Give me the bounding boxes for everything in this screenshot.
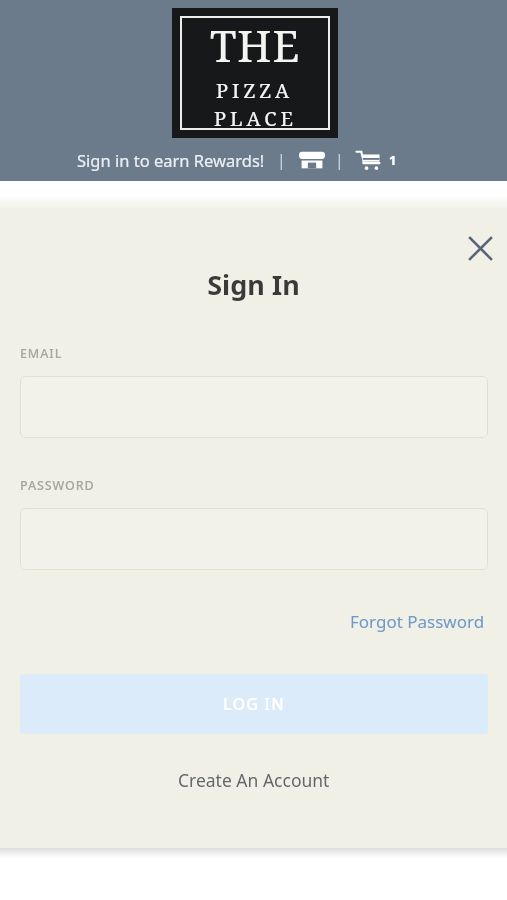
button[interactable]: Close (458, 226, 502, 270)
staticText: 1 (389, 151, 397, 169)
staticText: Create An Account (178, 768, 330, 792)
staticText: THE (210, 16, 301, 75)
staticText: PLACE (214, 105, 297, 130)
staticText: Sign in to earn Rewards! (77, 149, 265, 171)
button[interactable]: Store locations (297, 145, 327, 175)
button[interactable]: Password input (20, 508, 488, 570)
staticText: Sign In (207, 266, 300, 303)
button[interactable]: Email input (20, 376, 488, 438)
button[interactable]: The Pizza Place home (172, 8, 338, 138)
button[interactable]: Cart, 1 item (354, 146, 397, 174)
button[interactable]: Create An Account (162, 762, 346, 798)
staticText: LOG IN (223, 693, 285, 715)
button[interactable]: Forgot Password (346, 606, 489, 637)
staticText: | (277, 149, 286, 171)
staticText: PIZZA (216, 77, 294, 104)
button[interactable]: LOG IN (20, 674, 488, 734)
staticText: PASSWORD (20, 477, 95, 494)
staticText: Forgot Password (350, 610, 485, 633)
staticText: EMAIL (20, 345, 63, 362)
button[interactable]: Sign in to earn Rewards! (77, 149, 265, 171)
staticText: | (335, 149, 344, 171)
